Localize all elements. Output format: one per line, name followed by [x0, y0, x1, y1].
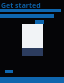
- staticText: Get started: [1, 1, 41, 11]
